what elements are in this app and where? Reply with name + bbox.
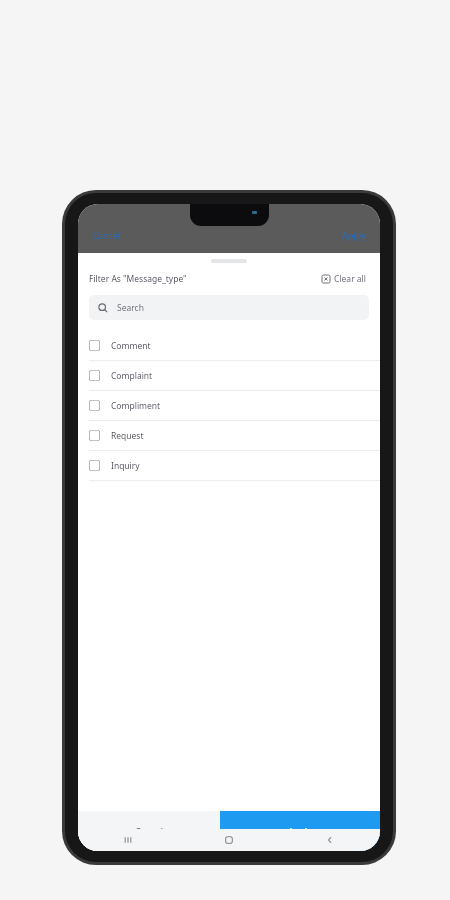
button[interactable]: Inquiry bbox=[78, 451, 380, 480]
staticText: Cancel bbox=[135, 825, 164, 837]
staticText: Complaint bbox=[111, 370, 153, 382]
staticText: Compliment bbox=[111, 400, 161, 412]
button[interactable]: Apply bbox=[328, 223, 380, 247]
staticText: Apply bbox=[288, 825, 312, 837]
staticText: Apply bbox=[342, 229, 366, 241]
button[interactable]: Home bbox=[178, 829, 279, 851]
button[interactable]: Apply bbox=[220, 811, 380, 851]
button[interactable]: Back bbox=[279, 829, 380, 851]
staticText: Search bbox=[117, 302, 144, 314]
button[interactable]: Search bbox=[89, 295, 369, 320]
button[interactable]: Compliment bbox=[78, 391, 380, 420]
button[interactable]: Request bbox=[78, 421, 380, 450]
button[interactable]: Recent apps bbox=[78, 829, 178, 851]
button[interactable]: Clear all bbox=[320, 270, 369, 288]
staticText: Request bbox=[111, 430, 144, 442]
staticText: Filter As "Message_type" bbox=[89, 273, 187, 285]
button[interactable]: Comment bbox=[78, 331, 380, 360]
staticText: Comment bbox=[111, 340, 151, 352]
staticText: Cancel bbox=[92, 229, 121, 241]
button[interactable]: Cancel bbox=[78, 811, 220, 851]
button[interactable]: Complaint bbox=[78, 361, 380, 390]
staticText: Inquiry bbox=[111, 460, 140, 472]
staticText: Clear all bbox=[334, 273, 367, 285]
button[interactable]: Cancel bbox=[78, 223, 135, 247]
